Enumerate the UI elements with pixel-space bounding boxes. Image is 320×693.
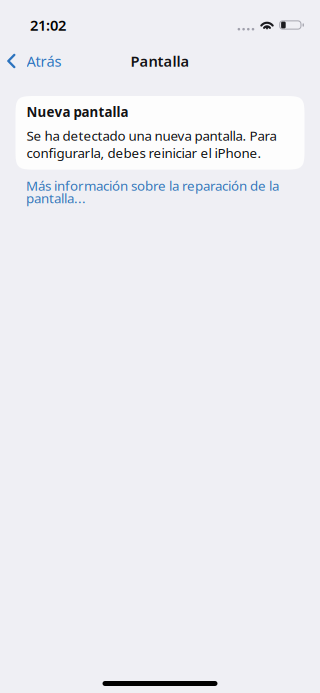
staticText: Nueva pantalla [26,103,128,121]
button[interactable]: Atrás [0,44,72,78]
button[interactable]: Más información sobre la reparación de l… [0,170,300,211]
staticText: 21:02 [30,15,66,35]
staticText: Atrás [27,51,62,71]
staticText: Pantalla [130,51,189,71]
staticText: Más información sobre la reparación de l… [26,177,279,207]
staticText: Se ha detectado una nueva pantalla. Para… [26,127,276,162]
